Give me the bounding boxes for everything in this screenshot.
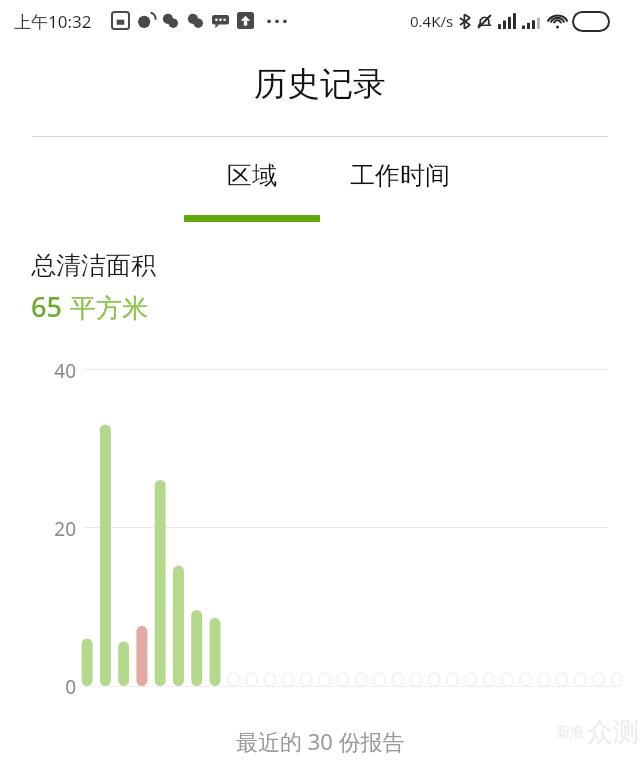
staticText: 65 <box>31 288 62 325</box>
staticText: 0 <box>65 674 76 700</box>
staticText: 上午10:32 <box>14 10 92 33</box>
staticText: 新浪 <box>556 724 584 742</box>
staticText: 平方米 <box>70 292 148 325</box>
staticText: 0.4K/s <box>410 11 454 31</box>
staticText: 众测 <box>587 716 639 749</box>
staticText: 总清洁面积 <box>31 250 156 281</box>
staticText: 工作时间 <box>350 160 450 191</box>
staticText: 40 <box>54 358 76 384</box>
button[interactable]: 区域 <box>184 160 320 222</box>
button[interactable]: 工作时间 <box>320 160 480 222</box>
staticText: 20 <box>54 516 76 542</box>
staticText: 历史记录 <box>254 63 386 105</box>
staticText: 最近的 30 份报告 <box>236 726 405 756</box>
staticText: 区域 <box>227 160 277 191</box>
